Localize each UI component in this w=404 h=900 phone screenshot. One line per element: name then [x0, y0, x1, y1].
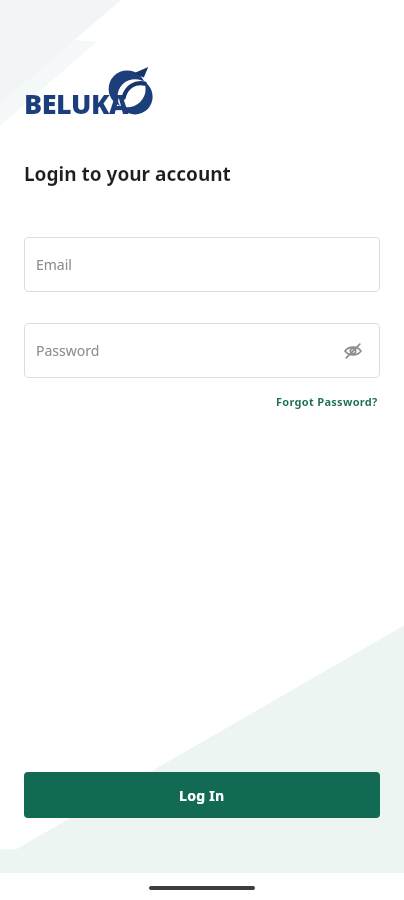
staticText: Password	[36, 341, 338, 360]
button[interactable]: Show password	[338, 336, 368, 366]
staticText: Forgot Password?	[276, 394, 378, 409]
staticText: BELUKA	[24, 85, 129, 122]
button[interactable]: Email	[24, 237, 380, 292]
button[interactable]: Password	[24, 323, 380, 378]
staticText: Email	[36, 255, 368, 274]
button[interactable]: Forgot Password?	[274, 391, 380, 412]
button[interactable]: Log In	[24, 772, 380, 818]
staticText: Login to your account	[24, 161, 231, 187]
staticText: Log In	[179, 786, 225, 805]
